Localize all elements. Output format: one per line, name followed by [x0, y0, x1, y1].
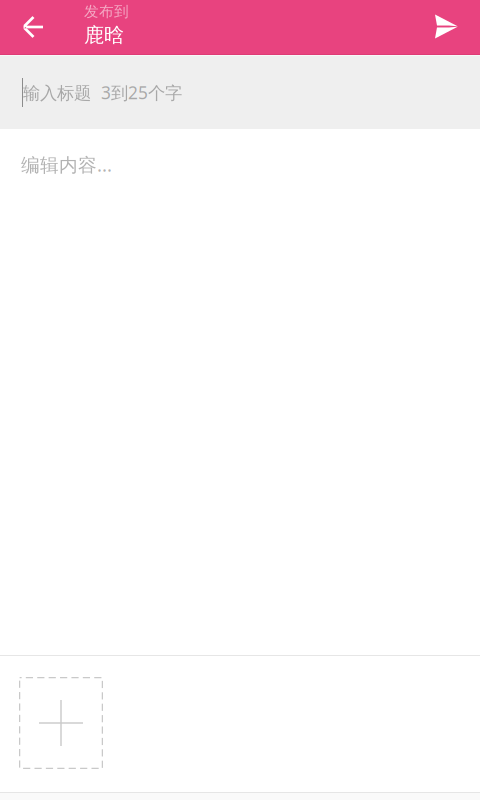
staticText: 编辑内容...	[21, 152, 112, 177]
button[interactable]: Send	[435, 0, 480, 54]
staticText: 发布到	[84, 3, 129, 21]
button[interactable]: Back	[0, 0, 66, 54]
staticText: 输入标题 3到25个字	[23, 81, 182, 104]
staticText: 鹿晗	[84, 23, 124, 47]
button[interactable]: Add photo	[0, 656, 103, 792]
button[interactable]: 输入标题 3到25个字	[0, 56, 480, 129]
